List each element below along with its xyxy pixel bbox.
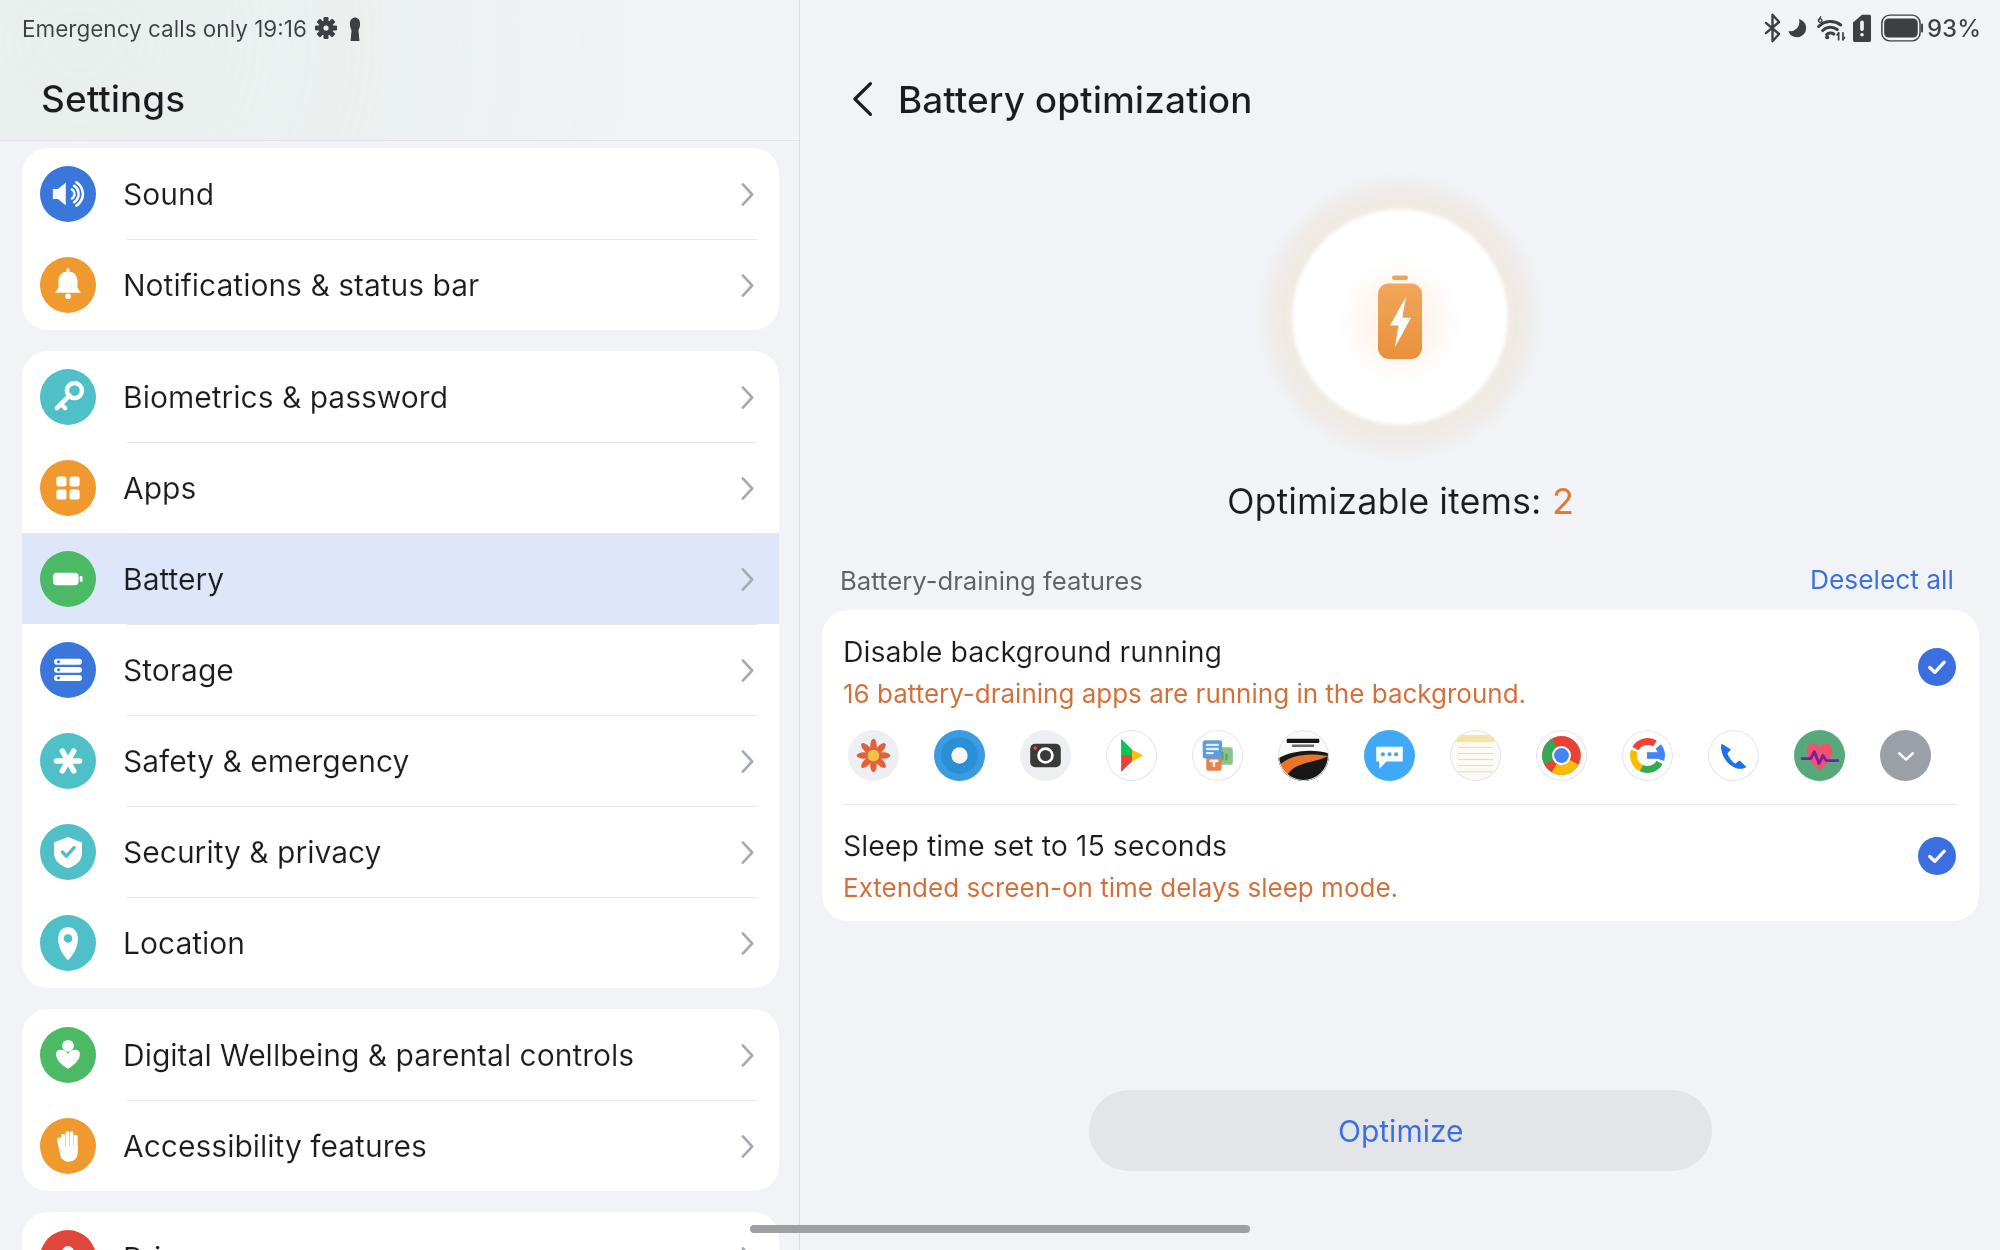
button[interactable]: Optimize — [1089, 1090, 1712, 1171]
staticText: Optimize — [1338, 1113, 1464, 1149]
staticText: Extended screen-on time delays sleep mod… — [843, 872, 1399, 903]
staticText: Digital Wellbeing & parental controls — [123, 1037, 635, 1073]
staticText: Emergency calls only 19:16 — [22, 15, 307, 42]
button[interactable]: Show more apps — [1880, 730, 1931, 781]
staticText: Battery optimization — [898, 77, 1253, 122]
staticText: Deselect all — [1810, 564, 1954, 596]
button[interactable]: Back — [831, 68, 893, 130]
staticText: Battery-draining features — [840, 565, 1143, 596]
staticText: Storage — [123, 652, 234, 688]
staticText: Safety & emergency — [123, 743, 410, 779]
button[interactable]: Selected — [1918, 648, 1956, 686]
staticText: Biometrics & password — [123, 379, 449, 415]
button[interactable]: Notifications & status bar — [22, 239, 779, 330]
staticText: Apps — [123, 470, 197, 506]
button[interactable]: Accessibility features — [22, 1100, 779, 1191]
button[interactable]: Deselect all — [1810, 564, 1954, 596]
staticText: 93% — [1927, 14, 1981, 43]
button[interactable]: Safety & emergency — [22, 715, 779, 806]
staticText: Sound — [123, 176, 215, 212]
staticText: Accessibility features — [123, 1128, 427, 1164]
button[interactable]: Sound — [22, 148, 779, 239]
staticText: Security & privacy — [123, 834, 382, 870]
button[interactable]: Storage — [22, 624, 779, 715]
staticText: Settings — [41, 76, 186, 121]
staticText: Notifications & status bar — [123, 267, 480, 303]
button[interactable]: Location — [22, 897, 779, 988]
staticText: Disable background running — [843, 634, 1222, 668]
staticText: Privacy — [123, 1240, 229, 1250]
staticText: Location — [123, 925, 246, 961]
button[interactable]: Digital Wellbeing & parental controls — [22, 1009, 779, 1100]
staticText: 16 battery-draining apps are running in … — [843, 678, 1527, 709]
button[interactable]: Selected — [1918, 837, 1956, 875]
staticText: Battery — [123, 561, 225, 597]
staticText: Optimizable items: — [1227, 479, 1552, 523]
staticText: Sleep time set to 15 seconds — [843, 828, 1228, 862]
button[interactable]: Battery — [22, 533, 779, 624]
button[interactable]: Privacy — [22, 1212, 779, 1250]
button[interactable]: Security & privacy — [22, 806, 779, 897]
staticText: 2 — [1552, 479, 1574, 523]
button[interactable]: Apps — [22, 442, 779, 533]
button[interactable]: Biometrics & password — [22, 351, 779, 442]
